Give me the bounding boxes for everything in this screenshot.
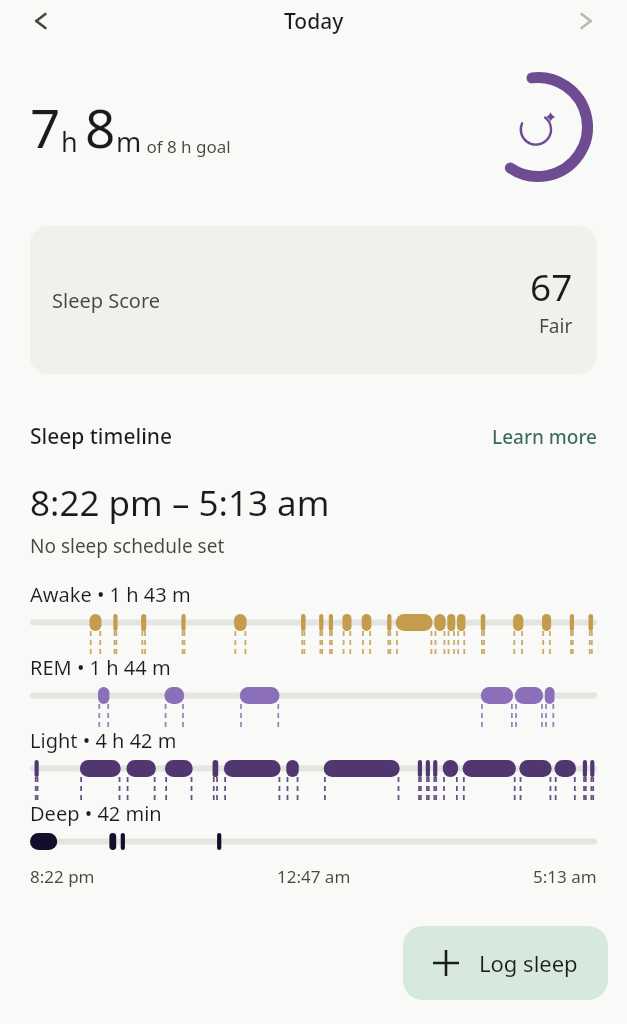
staticText: Learn more (492, 424, 597, 450)
button[interactable]: Log sleep (403, 926, 608, 1000)
button[interactable]: Sleep Score (30, 226, 597, 374)
button[interactable]: Previous day (20, 0, 64, 42)
staticText: h (61, 123, 78, 160)
staticText: Sleep Score (52, 287, 161, 314)
staticText: 7 (30, 91, 61, 163)
staticText: No sleep schedule set (30, 533, 225, 559)
staticText: 12:47 am (277, 865, 351, 888)
staticText: 5:13 am (533, 865, 597, 888)
staticText: Today (284, 7, 344, 36)
staticText: 8:22 pm (30, 865, 95, 888)
button[interactable]: Learn more (492, 424, 597, 450)
staticText: 67 (530, 261, 573, 311)
staticText: 8 (85, 91, 116, 163)
staticText: REM • 1 h 44 m (30, 654, 171, 681)
staticText: 8:22 pm – 5:13 am (30, 479, 330, 527)
button[interactable]: Next day (563, 0, 607, 42)
staticText: Light • 4 h 42 m (30, 727, 177, 754)
staticText: of 8 h goal (142, 135, 231, 158)
staticText: Deep • 42 min (30, 800, 162, 827)
staticText: Fair (539, 313, 573, 339)
staticText: Awake • 1 h 43 m (30, 581, 191, 608)
staticText: Sleep timeline (30, 422, 492, 451)
staticText: m (116, 123, 142, 160)
staticText: Log sleep (479, 948, 578, 978)
